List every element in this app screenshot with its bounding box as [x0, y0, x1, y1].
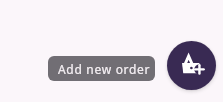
staticText: Add new order: [58, 61, 151, 77]
button[interactable]: Add new order: [48, 56, 155, 81]
button[interactable]: [167, 41, 216, 90]
